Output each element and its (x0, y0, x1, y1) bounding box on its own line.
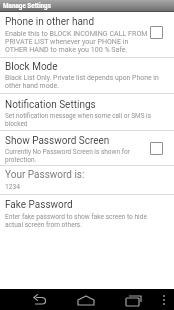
button[interactable] (150, 26, 163, 39)
staticText: Notification Settings (5, 99, 96, 111)
button[interactable]: Fake Password (0, 195, 174, 233)
button[interactable]: Block Mode (0, 58, 174, 93)
button[interactable]: Notification Settings (0, 94, 174, 130)
staticText: Currently No Password Screen is shown fo… (5, 148, 130, 164)
staticText: Show Password Screen (5, 135, 110, 147)
button[interactable] (156, 290, 172, 309)
button[interactable] (121, 290, 146, 309)
staticText: 1234 (5, 183, 21, 191)
staticText: Block Mode (5, 61, 58, 73)
staticText: Manage Settings (3, 2, 51, 9)
staticText: Your Password is: (5, 169, 85, 181)
staticText: Phone in other hand (5, 16, 95, 28)
button[interactable]: Phone in other hand (0, 12, 174, 57)
staticText: Fake Password (5, 199, 73, 211)
staticText: Black List Only. Private list depends up… (5, 74, 159, 90)
button[interactable] (27, 290, 52, 309)
button[interactable]: Your Password is: (0, 166, 174, 194)
staticText: Enter fake password to show fake screen … (5, 213, 147, 229)
button[interactable] (74, 290, 99, 309)
staticText: Set notification message when some call … (5, 112, 151, 128)
button[interactable] (150, 142, 163, 155)
staticText: Enable this to BLOCK INCOMING CALL FROM … (5, 29, 148, 53)
button[interactable]: Show Password Screen (0, 131, 174, 165)
